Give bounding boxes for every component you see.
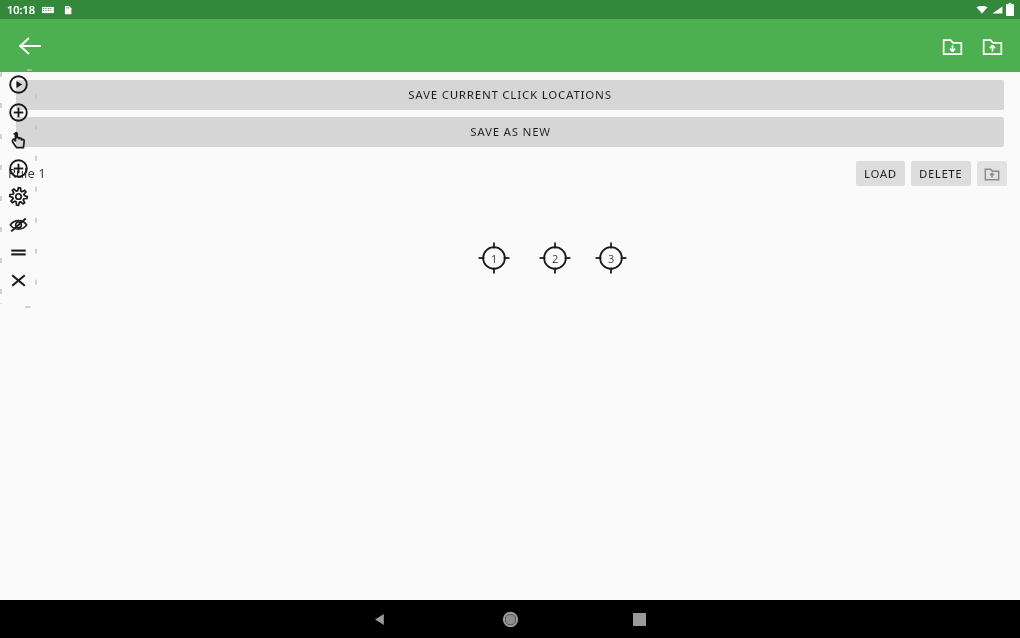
staticText: 3	[608, 251, 615, 266]
button[interactable]: Menu	[1, 238, 36, 266]
button[interactable]: Export rule	[977, 161, 1007, 186]
button[interactable]: Settings	[1, 182, 36, 210]
staticText: DELETE	[919, 166, 963, 182]
button[interactable]: Remove click	[1, 154, 36, 182]
button[interactable]: Export rules	[972, 26, 1012, 66]
button[interactable]: Back	[362, 601, 398, 637]
button[interactable]: Import rules	[932, 26, 972, 66]
staticText: Rule 1	[8, 164, 46, 182]
button[interactable]: Recent apps	[621, 601, 657, 637]
button[interactable]: 1	[478, 242, 510, 274]
staticText: 1	[491, 251, 498, 266]
button[interactable]: Home	[492, 601, 528, 637]
button[interactable]: LOAD	[856, 161, 905, 186]
button[interactable]: Hide	[1, 210, 36, 238]
button[interactable]: 3	[595, 242, 627, 274]
button[interactable]: SAVE CURRENT CLICK LOCATIONS	[16, 80, 1004, 110]
button[interactable]: Play	[1, 70, 36, 98]
button[interactable]: Close	[1, 266, 36, 294]
button[interactable]: 2	[539, 242, 571, 274]
button[interactable]: Back	[10, 26, 50, 66]
staticText: 2	[552, 251, 559, 266]
staticText: SAVE AS NEW	[470, 124, 551, 140]
button[interactable]: DELETE	[911, 161, 971, 186]
button[interactable]: Add click	[1, 98, 36, 126]
button[interactable]: SAVE AS NEW	[16, 117, 1004, 147]
staticText: LOAD	[864, 166, 897, 182]
staticText: SAVE CURRENT CLICK LOCATIONS	[408, 87, 612, 103]
button[interactable]: Manual tap	[1, 126, 36, 154]
staticText: 10:18	[7, 2, 36, 17]
